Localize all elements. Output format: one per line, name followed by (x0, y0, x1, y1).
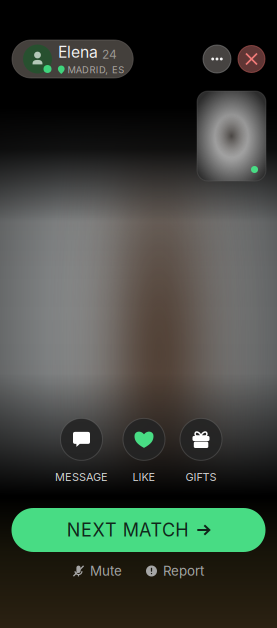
staticText: NEXT MATCH (67, 519, 188, 541)
staticText: 24 (102, 47, 117, 62)
button[interactable]: NEXT MATCH (11, 508, 265, 552)
button[interactable]: MESSAGE (55, 418, 108, 484)
button[interactable]: More options (203, 45, 231, 73)
button[interactable]: LIKE (123, 418, 165, 484)
staticText: MESSAGE (55, 470, 108, 484)
button[interactable]: Mute (73, 563, 122, 579)
staticText: LIKE (132, 470, 155, 484)
staticText: Mute (90, 563, 122, 579)
button[interactable]: Report (146, 563, 204, 579)
staticText: Report (163, 563, 204, 579)
staticText: MADRID, ES (67, 64, 124, 75)
button[interactable]: GIFTS (180, 418, 222, 484)
button[interactable]: Elena (12, 40, 133, 78)
button[interactable]: End call (238, 45, 265, 72)
staticText: GIFTS (185, 470, 216, 484)
staticText: Elena (58, 43, 98, 62)
